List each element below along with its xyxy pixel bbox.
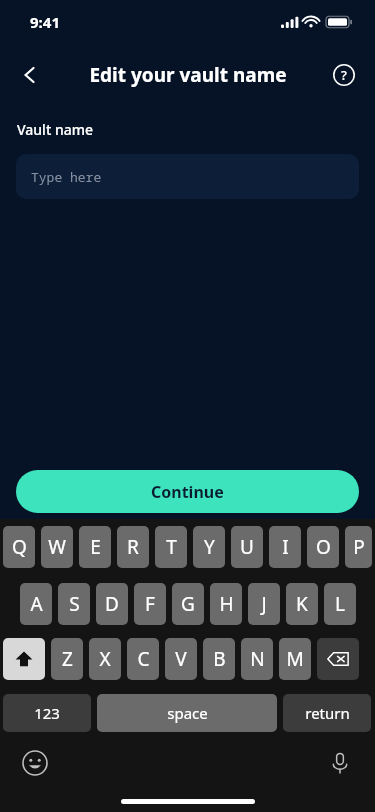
staticText: S xyxy=(69,591,80,617)
staticText: Type here xyxy=(31,168,102,186)
button[interactable]: P xyxy=(345,526,372,568)
button[interactable]: Z xyxy=(51,638,83,680)
button[interactable]: K xyxy=(286,583,318,625)
button[interactable]: M xyxy=(279,638,311,680)
button[interactable]: return xyxy=(283,694,371,732)
button[interactable]: Continue xyxy=(16,470,359,513)
button[interactable]: H xyxy=(210,583,242,625)
staticText: D xyxy=(105,591,119,617)
staticText: Continue xyxy=(151,481,224,503)
button[interactable]: O xyxy=(307,526,339,568)
button[interactable]: D xyxy=(96,583,128,625)
staticText: space xyxy=(167,703,208,723)
staticText: Edit your vault name xyxy=(89,62,287,88)
button[interactable]: Shift xyxy=(3,638,45,680)
button[interactable]: Backspace xyxy=(317,638,359,680)
button[interactable]: Back xyxy=(8,53,52,97)
staticText: Z xyxy=(62,646,73,672)
button[interactable]: C xyxy=(127,638,159,680)
button[interactable]: T xyxy=(155,526,187,568)
staticText: E xyxy=(90,534,101,560)
staticText: J xyxy=(261,591,267,617)
staticText: U xyxy=(240,534,254,560)
staticText: ? xyxy=(341,66,347,84)
button[interactable]: N xyxy=(241,638,273,680)
staticText: return xyxy=(305,703,350,723)
button[interactable]: S xyxy=(58,583,90,625)
staticText: P xyxy=(353,534,365,560)
staticText: L xyxy=(335,591,345,617)
staticText: X xyxy=(99,646,111,672)
staticText: B xyxy=(213,646,226,672)
button[interactable]: J xyxy=(248,583,280,625)
button[interactable]: Type here xyxy=(16,154,359,199)
staticText: G xyxy=(181,591,195,617)
button[interactable]: X xyxy=(89,638,121,680)
staticText: W xyxy=(48,534,66,560)
staticText: K xyxy=(296,591,308,617)
staticText: O xyxy=(316,534,331,560)
staticText: I xyxy=(282,534,289,560)
button[interactable]: B xyxy=(203,638,235,680)
staticText: 123 xyxy=(34,703,60,723)
button[interactable]: U xyxy=(231,526,263,568)
staticText: H xyxy=(219,591,234,617)
button[interactable]: Q xyxy=(3,526,35,568)
button[interactable]: F xyxy=(134,583,166,625)
staticText: A xyxy=(30,591,43,617)
button[interactable]: W xyxy=(41,526,73,568)
button[interactable]: R xyxy=(117,526,149,568)
staticText: 9:41 xyxy=(30,12,60,32)
staticText: Q xyxy=(12,534,27,560)
button[interactable]: E xyxy=(79,526,111,568)
staticText: T xyxy=(166,534,177,560)
button[interactable]: G xyxy=(172,583,204,625)
button[interactable]: L xyxy=(324,583,356,625)
staticText: N xyxy=(250,646,265,672)
staticText: C xyxy=(137,646,150,672)
staticText: V xyxy=(175,646,187,672)
button[interactable]: Dictation xyxy=(323,746,357,780)
staticText: R xyxy=(127,534,139,560)
staticText: F xyxy=(145,591,155,617)
button[interactable]: space xyxy=(97,694,277,732)
staticText: Vault name xyxy=(17,120,93,139)
button[interactable]: Help xyxy=(325,56,363,94)
button[interactable]: Emoji xyxy=(18,746,52,780)
button[interactable]: A xyxy=(20,583,52,625)
staticText: M xyxy=(286,646,304,672)
button[interactable]: I xyxy=(269,526,301,568)
staticText: Y xyxy=(204,534,215,560)
button[interactable]: 123 xyxy=(3,694,91,732)
button[interactable]: V xyxy=(165,638,197,680)
button[interactable]: Y xyxy=(193,526,225,568)
